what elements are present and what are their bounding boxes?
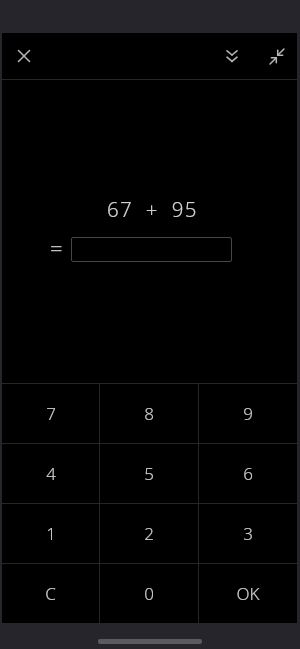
button[interactable] <box>212 33 252 79</box>
button[interactable]: 7 <box>2 384 99 443</box>
button[interactable]: OK <box>199 564 297 623</box>
button[interactable]: 6 <box>199 444 297 503</box>
staticText: 8 <box>144 402 154 425</box>
button[interactable] <box>71 237 232 262</box>
staticText: 67 + 95 <box>107 195 198 223</box>
staticText: 5 <box>144 462 154 485</box>
staticText: 7 <box>46 402 56 425</box>
button[interactable]: 0 <box>100 564 198 623</box>
button[interactable]: 2 <box>100 504 198 563</box>
button[interactable]: 5 <box>100 444 198 503</box>
button[interactable]: 1 <box>2 504 99 563</box>
button[interactable] <box>98 639 202 644</box>
button[interactable] <box>257 33 297 79</box>
button[interactable]: 8 <box>100 384 198 443</box>
staticText: 0 <box>144 582 154 605</box>
staticText: = <box>50 232 63 262</box>
staticText: C <box>45 582 56 605</box>
button[interactable]: 9 <box>199 384 297 443</box>
staticText: 2 <box>144 522 154 545</box>
staticText: OK <box>236 582 260 605</box>
button[interactable] <box>2 33 46 79</box>
staticText: 6 <box>243 462 253 485</box>
staticText: 9 <box>243 402 253 425</box>
button[interactable]: 3 <box>199 504 297 563</box>
staticText: 1 <box>46 522 56 545</box>
button[interactable]: 4 <box>2 444 99 503</box>
staticText: 3 <box>243 522 253 545</box>
staticText: 4 <box>46 462 56 485</box>
button[interactable]: C <box>2 564 99 623</box>
